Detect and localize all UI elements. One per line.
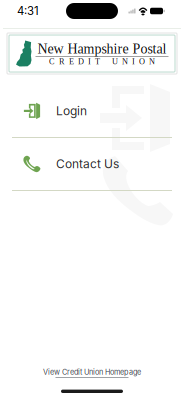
staticText: New Hampshire Postal <box>37 41 166 56</box>
staticText: 4:31 <box>17 4 39 18</box>
staticText: Contact Us <box>56 157 119 171</box>
staticText: Login <box>56 104 87 118</box>
button[interactable]: Contact Us <box>0 138 184 191</box>
staticText: C R E D I T U N I O N <box>49 57 155 66</box>
button[interactable]: View Credit Union Homepage <box>43 365 141 381</box>
staticText: View Credit Union Homepage <box>43 368 141 377</box>
button[interactable]: Login <box>0 85 184 138</box>
